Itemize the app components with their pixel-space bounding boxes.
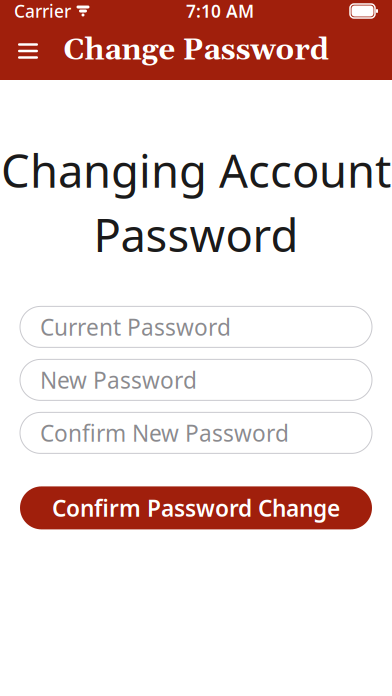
staticText: Carrier bbox=[14, 0, 71, 22]
staticText: New Password bbox=[40, 365, 197, 395]
button[interactable]: New Password bbox=[20, 359, 372, 400]
button[interactable]: Current Password bbox=[20, 306, 372, 347]
staticText: 7:10 AM bbox=[186, 0, 254, 22]
button[interactable]: Confirm Password Change bbox=[20, 486, 372, 529]
staticText: Confirm Password Change bbox=[52, 493, 340, 523]
staticText: Password bbox=[93, 204, 298, 264]
staticText: Changing Account bbox=[1, 140, 391, 200]
staticText: Confirm New Password bbox=[40, 418, 289, 448]
button[interactable]: Menu bbox=[6, 29, 50, 73]
staticText: Change Password bbox=[63, 32, 328, 70]
staticText: Current Password bbox=[40, 312, 231, 342]
button[interactable]: Confirm New Password bbox=[20, 412, 372, 453]
